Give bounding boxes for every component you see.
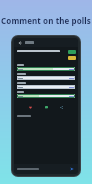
button[interactable] [14, 81, 78, 90]
button[interactable] [14, 90, 78, 99]
button[interactable]: Comment [43, 104, 50, 111]
button[interactable]: Share [58, 104, 65, 111]
button[interactable]: Back [17, 40, 23, 46]
button[interactable]: Send [69, 166, 75, 172]
button[interactable]: Vote status [68, 50, 76, 54]
button[interactable]: Poll timer [68, 56, 76, 60]
button[interactable] [14, 63, 78, 72]
staticText: Comment on the polls [1, 15, 91, 26]
button[interactable]: Like [27, 104, 34, 111]
button[interactable] [14, 72, 78, 81]
button[interactable] [17, 166, 67, 172]
